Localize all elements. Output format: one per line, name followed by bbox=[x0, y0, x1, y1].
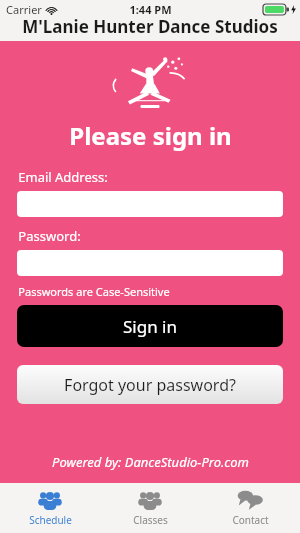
button[interactable] bbox=[17, 250, 283, 276]
staticText: Classes bbox=[133, 513, 168, 527]
staticText: M'Lanie Hunter Dance Studios bbox=[22, 15, 278, 38]
button[interactable]: Schedule bbox=[0, 483, 100, 533]
staticText: 1:44 PM bbox=[129, 2, 172, 17]
button[interactable]: Contact bbox=[200, 483, 300, 533]
staticText: Forgot your password? bbox=[64, 374, 236, 396]
staticText: Contact bbox=[232, 513, 269, 527]
staticText: Sign in bbox=[123, 315, 177, 338]
button[interactable]: Sign in bbox=[17, 305, 283, 347]
button[interactable]: Classes bbox=[100, 483, 200, 533]
button[interactable] bbox=[17, 191, 283, 217]
staticText: Powered by: DanceStudio-Pro.com bbox=[52, 453, 249, 471]
staticText: Schedule bbox=[29, 513, 72, 527]
staticText: Password: bbox=[18, 227, 81, 245]
button[interactable]: Forgot your password? bbox=[17, 365, 283, 404]
staticText: Email Address: bbox=[18, 168, 108, 186]
staticText: Carrier bbox=[6, 2, 42, 17]
staticText: Please sign in bbox=[69, 119, 232, 152]
staticText: Passwords are Case-Sensitive bbox=[18, 284, 170, 299]
